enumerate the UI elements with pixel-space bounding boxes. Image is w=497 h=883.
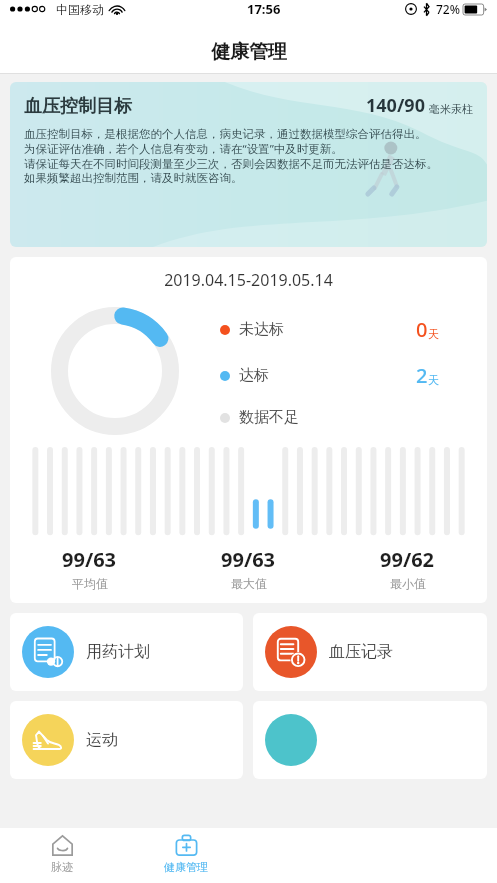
staticText: 血压控制目标，是根据您的个人信息，病史记录，通过数据模型综合评估得出。 bbox=[24, 127, 427, 141]
staticText: 72% bbox=[436, 1, 460, 17]
other: 血压记录 bbox=[265, 626, 317, 678]
staticText: 未达标 bbox=[239, 320, 284, 339]
staticText: 平均值 bbox=[72, 576, 108, 591]
staticText: 最大值 bbox=[231, 576, 267, 591]
staticText: 请保证每天在不同时间段测量至少三次，否则会因数据不足而无法评估是否达标。 bbox=[24, 157, 438, 171]
staticText: 中国移动 bbox=[56, 2, 104, 17]
button[interactable]: 血压记录 bbox=[253, 613, 487, 691]
other: 健康管理 bbox=[175, 834, 198, 857]
staticText: 血压控制目标 bbox=[24, 95, 132, 118]
staticText: 天 bbox=[428, 373, 439, 387]
other: 脉迹 bbox=[51, 834, 74, 857]
staticText: 健康管理 bbox=[211, 40, 287, 64]
staticText: 99/62 bbox=[380, 546, 435, 573]
staticText: 如果频繁超出控制范围，请及时就医咨询。 bbox=[24, 171, 243, 185]
staticText: 血压记录 bbox=[329, 642, 393, 662]
staticText: 脉迹 bbox=[51, 860, 73, 874]
button[interactable]: 2019.04.15-2019.05.14 bbox=[10, 257, 487, 603]
staticText: 运动 bbox=[86, 730, 118, 750]
button[interactable]: 运动 bbox=[10, 701, 243, 779]
staticText: 用药计划 bbox=[86, 642, 150, 662]
other: 用药计划 bbox=[22, 626, 74, 678]
staticText: 0 bbox=[416, 316, 428, 343]
staticText: 最小值 bbox=[390, 576, 426, 591]
button[interactable]: 健康管理 bbox=[124, 828, 248, 883]
staticText: 健康管理 bbox=[164, 860, 208, 874]
staticText: 2 bbox=[416, 362, 428, 389]
button[interactable]: 脉迹 bbox=[0, 828, 124, 883]
other: 运动 bbox=[22, 714, 74, 766]
staticText: 为保证评估准确，若个人信息有变动，请在“设置”中及时更新。 bbox=[24, 141, 343, 157]
staticText: 天 bbox=[428, 327, 439, 341]
staticText: 17:56 bbox=[247, 0, 281, 18]
staticText: 99/63 bbox=[221, 546, 276, 573]
button[interactable]: 功能 bbox=[253, 701, 487, 779]
staticText: 数据不足 bbox=[239, 408, 299, 427]
staticText: 达标 bbox=[239, 366, 269, 385]
staticText: 99/63 bbox=[62, 546, 117, 573]
staticText: 毫米汞柱 bbox=[429, 102, 473, 116]
button[interactable]: 用药计划 bbox=[10, 613, 243, 691]
button[interactable]: 血压控制目标 bbox=[10, 82, 487, 247]
staticText: 2019.04.15-2019.05.14 bbox=[10, 269, 487, 291]
other: 功能 bbox=[265, 714, 317, 766]
staticText: 140/90 bbox=[366, 93, 425, 118]
